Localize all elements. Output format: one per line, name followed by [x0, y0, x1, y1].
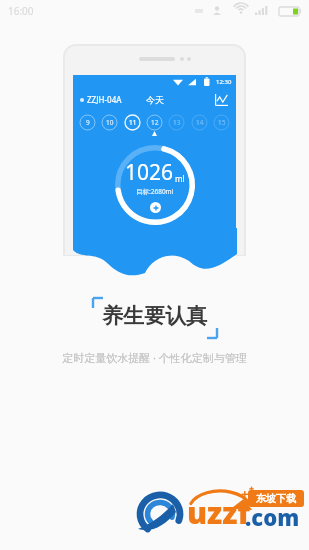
staticText: 15	[218, 118, 226, 127]
staticText: 11	[129, 118, 137, 127]
staticText: .com	[245, 502, 300, 532]
button[interactable]: 15	[213, 114, 230, 131]
button[interactable]: Statistics chart	[215, 93, 228, 106]
button[interactable]: ZZJH-04A	[80, 94, 122, 105]
button[interactable]: 10	[101, 114, 118, 131]
button[interactable]: 12	[146, 114, 163, 131]
staticText: 东坡下载	[256, 492, 296, 505]
staticText: 16:00	[8, 4, 34, 18]
staticText: ZZJH-04A	[87, 94, 122, 105]
button[interactable]: 13	[168, 114, 185, 131]
button[interactable]: Add water	[150, 202, 161, 213]
staticText: 12	[151, 118, 159, 127]
staticText: 14	[196, 118, 204, 127]
staticText: 养生要认真	[102, 303, 207, 329]
staticText: ml	[175, 173, 185, 184]
button[interactable]: uzzf.com watermark	[137, 484, 309, 544]
staticText: 定时定量饮水提醒 · 个性化定制与管理	[0, 350, 309, 365]
staticText: 1026	[125, 158, 174, 187]
button[interactable]: 11	[124, 114, 141, 131]
button[interactable]: Water intake progress	[114, 144, 196, 226]
button[interactable]: 今天	[146, 94, 164, 105]
staticText: 10	[106, 118, 114, 127]
staticText: 12:30	[216, 78, 232, 86]
staticText: 目标:2680ml	[136, 187, 174, 196]
button[interactable]: 9	[79, 114, 96, 131]
staticText: 9	[86, 118, 90, 127]
staticText: 13	[173, 118, 181, 127]
button[interactable]: 14	[191, 114, 208, 131]
staticText: uzzf	[187, 492, 250, 533]
